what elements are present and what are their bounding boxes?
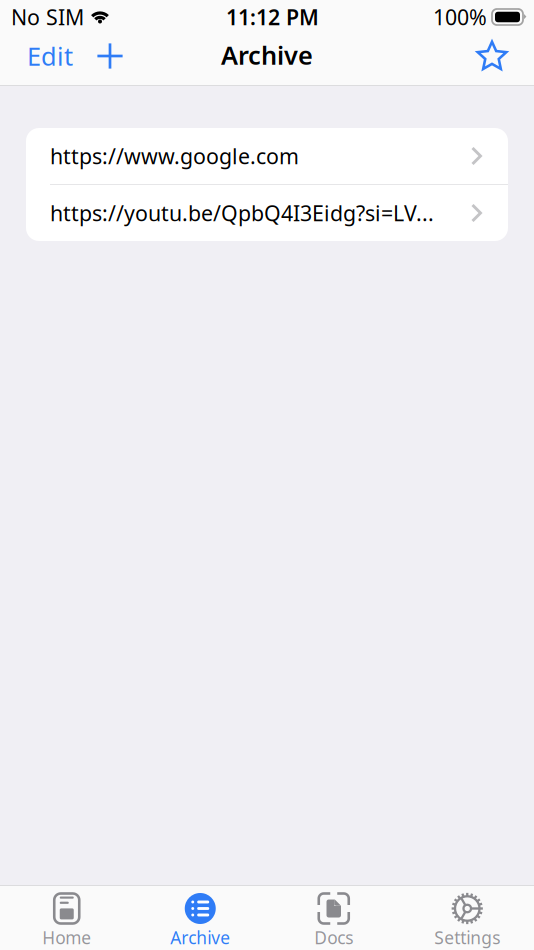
button[interactable]: Edit: [27, 34, 73, 78]
button[interactable]: Add: [90, 34, 130, 78]
button[interactable]: Docs: [267, 886, 400, 950]
staticText: No SIM: [11, 3, 84, 31]
staticText: 11:12 PM: [226, 3, 319, 31]
button[interactable]: Settings: [400, 886, 534, 950]
staticText: 100%: [433, 3, 487, 31]
button[interactable]: Home: [0, 886, 133, 950]
button[interactable]: Favorites: [472, 34, 512, 78]
staticText: https://youtu.be/QpbQ4I3Eidg?si=LV...: [50, 199, 434, 227]
staticText: Settings: [434, 926, 500, 949]
button[interactable]: https://youtu.be/QpbQ4I3Eidg?si=LV...: [26, 185, 508, 241]
staticText: Home: [42, 926, 91, 949]
staticText: Archive: [221, 38, 313, 72]
staticText: https://www.google.com: [50, 142, 299, 170]
staticText: Edit: [27, 39, 73, 73]
button[interactable]: Archive: [133, 886, 267, 950]
staticText: Docs: [314, 926, 353, 949]
button[interactable]: https://www.google.com: [26, 128, 508, 184]
staticText: Archive: [170, 926, 230, 949]
